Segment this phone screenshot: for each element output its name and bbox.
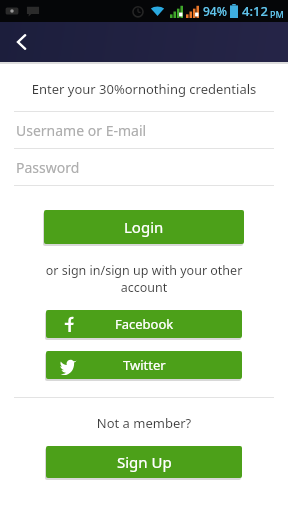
staticText: Twitter (123, 356, 166, 374)
staticText: Sign Up (117, 452, 172, 472)
staticText: Not a member? (0, 414, 288, 432)
staticText: Password (16, 158, 80, 177)
button[interactable]: Login (44, 210, 244, 244)
staticText: 94% (203, 3, 227, 19)
button[interactable]: Back (0, 22, 44, 62)
staticText: 4:12 (242, 2, 268, 20)
staticText: Login (124, 217, 164, 237)
button[interactable]: Password (16, 149, 272, 185)
button[interactable]: Facebook (46, 310, 242, 338)
staticText: Enter your 30%ornothing credentials (12, 80, 276, 98)
staticText: or sign in/sign up with your other accou… (16, 262, 272, 296)
staticText: Username or E-mail (16, 121, 147, 140)
staticText: PM (270, 8, 284, 20)
staticText: Facebook (115, 315, 174, 333)
button[interactable]: Username or E-mail (16, 112, 272, 148)
button[interactable]: Sign Up (46, 446, 242, 478)
button[interactable]: Twitter (46, 351, 242, 379)
